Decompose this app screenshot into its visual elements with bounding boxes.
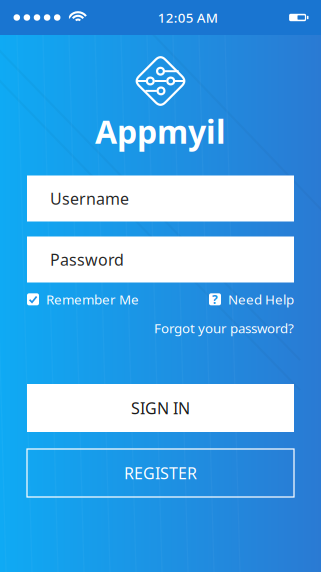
button[interactable]: ?	[209, 290, 294, 308]
staticText: Username	[50, 188, 129, 209]
button[interactable]: Forgot your password?	[154, 319, 294, 337]
staticText: Password	[50, 249, 124, 270]
staticText: Appmyil	[95, 110, 226, 152]
staticText: 12:05 AM	[158, 9, 218, 26]
staticText: SIGN IN	[131, 397, 190, 419]
staticText: ?	[212, 291, 218, 307]
button[interactable]: Remember Me	[27, 290, 139, 308]
button[interactable]: Password	[27, 236, 294, 282]
button[interactable]: REGISTER	[27, 449, 294, 497]
button[interactable]: SIGN IN	[27, 384, 294, 432]
staticText: Remember Me	[46, 290, 139, 308]
staticText: REGISTER	[124, 462, 197, 484]
button[interactable]: Username	[27, 175, 294, 221]
staticText: Forgot your password?	[154, 319, 294, 337]
staticText: Need Help	[228, 290, 294, 308]
